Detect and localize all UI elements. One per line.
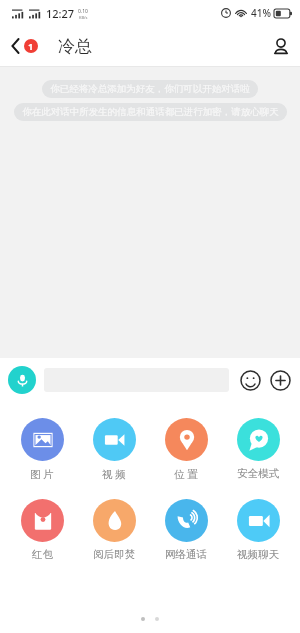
staticText: 位 置 <box>174 467 198 481</box>
staticText: 网络通话 <box>165 548 207 561</box>
button[interactable]: 图 片 <box>6 416 78 483</box>
staticText: 视频聊天 <box>237 548 279 561</box>
staticText: 阅后即焚 <box>93 548 135 561</box>
staticText: 你已经将冷总添加为好友，你们可以开始对话啦 <box>50 83 250 95</box>
staticText: 冷总 <box>58 36 92 57</box>
button[interactable]: 阅后即焚 <box>78 497 150 563</box>
button[interactable]: Back, 1 unread <box>0 33 44 59</box>
staticText: 红包 <box>32 548 53 561</box>
button[interactable]: 安全模式 <box>222 416 294 482</box>
staticText: 图 片 <box>30 467 54 481</box>
button[interactable]: 红包 <box>6 497 78 563</box>
button[interactable]: Contact profile <box>262 30 300 62</box>
staticText: 安全模式 <box>237 467 279 480</box>
staticText: 视 频 <box>102 467 126 481</box>
staticText: 0.10 <box>78 8 88 15</box>
button[interactable]: Emoji <box>238 368 262 392</box>
staticText: 1 <box>28 40 34 52</box>
button[interactable]: 视 频 <box>78 416 150 483</box>
button[interactable]: 网络通话 <box>150 497 222 563</box>
button[interactable]: 位 置 <box>150 416 222 483</box>
staticText: 41% <box>251 6 271 20</box>
staticText: 12:27 <box>46 6 75 21</box>
staticText: KB/s <box>79 15 88 20</box>
staticText: 你在此对话中所发生的信息和通话都已进行加密，请放心聊天 <box>22 106 279 118</box>
button[interactable]: More attachments <box>268 368 292 392</box>
button[interactable]: 视频聊天 <box>222 497 294 563</box>
button[interactable]: Voice message <box>8 366 36 394</box>
